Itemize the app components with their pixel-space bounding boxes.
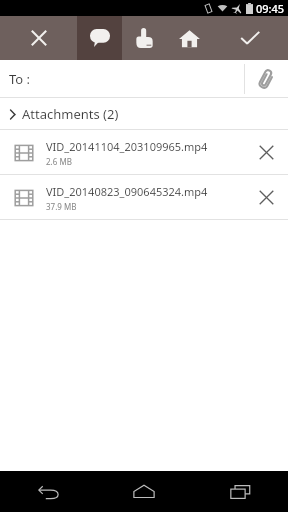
button[interactable]: Done (212, 16, 288, 60)
button[interactable]: Back (0, 471, 96, 512)
button[interactable]: Recent apps (192, 471, 288, 512)
button[interactable]: Home (96, 471, 192, 512)
button[interactable]: VID_20141104_203109965.mp4 (0, 130, 288, 175)
button[interactable]: Attach file (245, 60, 288, 98)
staticText: 2.6 MB (46, 156, 72, 167)
staticText: To : (9, 70, 31, 88)
button[interactable]: Remove VID_20141104_203109965.mp4 (244, 130, 288, 175)
staticText: VID_20140823_090645324.mp4 (46, 184, 208, 199)
staticText: VID_20141104_203109965.mp4 (46, 139, 208, 154)
button[interactable]: Home (167, 16, 212, 60)
button[interactable]: VID_20140823_090645324.mp4 (0, 175, 288, 220)
staticText: 37.9 MB (46, 201, 77, 212)
button[interactable]: To : (0, 60, 244, 98)
button[interactable]: Tap (122, 16, 167, 60)
button[interactable]: Attachments (2) (0, 98, 288, 130)
button[interactable]: Close (0, 16, 77, 60)
button[interactable]: Remove VID_20140823_090645324.mp4 (244, 175, 288, 220)
staticText: Attachments (2) (22, 105, 119, 123)
staticText: 09:45 (256, 1, 285, 16)
button[interactable]: Message (77, 16, 122, 60)
